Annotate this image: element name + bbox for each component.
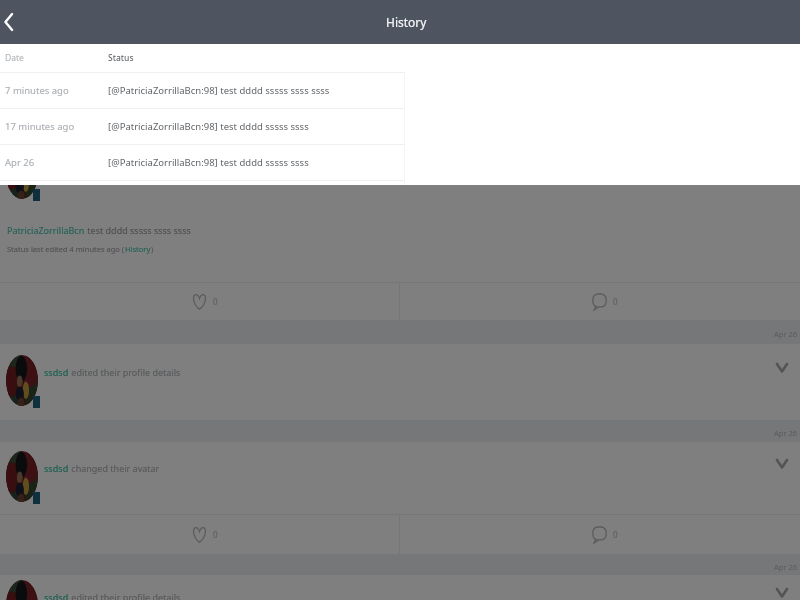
staticText: ssdsd: [44, 462, 69, 474]
staticText: ): [151, 244, 154, 254]
staticText: PatriciaZorrillaBcn: [7, 224, 85, 236]
staticText: [@PatriciaZorrillaBcn:98] test dddd ssss…: [108, 84, 330, 97]
staticText: Date: [5, 52, 108, 64]
staticText: History: [386, 14, 427, 30]
button[interactable]: Expand: [770, 451, 794, 475]
staticText: Status: [108, 52, 134, 64]
staticText: 0: [213, 529, 218, 540]
staticText: edited their profile details: [69, 591, 181, 600]
button[interactable]: ssdsd: [0, 344, 800, 420]
staticText: edited their profile details: [69, 366, 181, 378]
staticText: 0: [613, 529, 618, 540]
button[interactable]: Apr 26: [0, 144, 800, 180]
staticText: ssdsd: [44, 591, 69, 600]
staticText: Apr 26: [5, 156, 108, 169]
staticText: changed their avatar: [69, 462, 160, 474]
staticText: [@PatriciaZorrillaBcn:98] test dddd ssss…: [108, 156, 309, 169]
staticText: ssdsd: [44, 366, 69, 378]
staticText: 0: [213, 296, 218, 307]
button[interactable]: ssdsd: [0, 575, 800, 600]
staticText: 7 minutes ago: [5, 84, 108, 97]
staticText: test dddd sssss ssss ssss: [85, 224, 191, 236]
staticText: History: [125, 244, 151, 254]
staticText: 0: [613, 296, 618, 307]
staticText: Apr 26: [774, 428, 798, 438]
staticText: 17 minutes ago: [5, 120, 108, 133]
button[interactable]: 7 minutes ago: [0, 72, 800, 108]
staticText: Status last edited 4 minutes ago (: [7, 244, 125, 254]
button[interactable]: ssdsd: [0, 442, 800, 514]
staticText: [@PatriciaZorrillaBcn:98] test dddd ssss…: [108, 120, 309, 133]
button[interactable]: Back: [0, 2, 20, 42]
button[interactable]: 17 minutes ago: [0, 108, 800, 144]
staticText: Apr 26: [774, 562, 798, 572]
button[interactable]: Expand: [770, 580, 794, 600]
staticText: Apr 26: [774, 329, 798, 339]
button[interactable]: Expand: [770, 355, 794, 379]
